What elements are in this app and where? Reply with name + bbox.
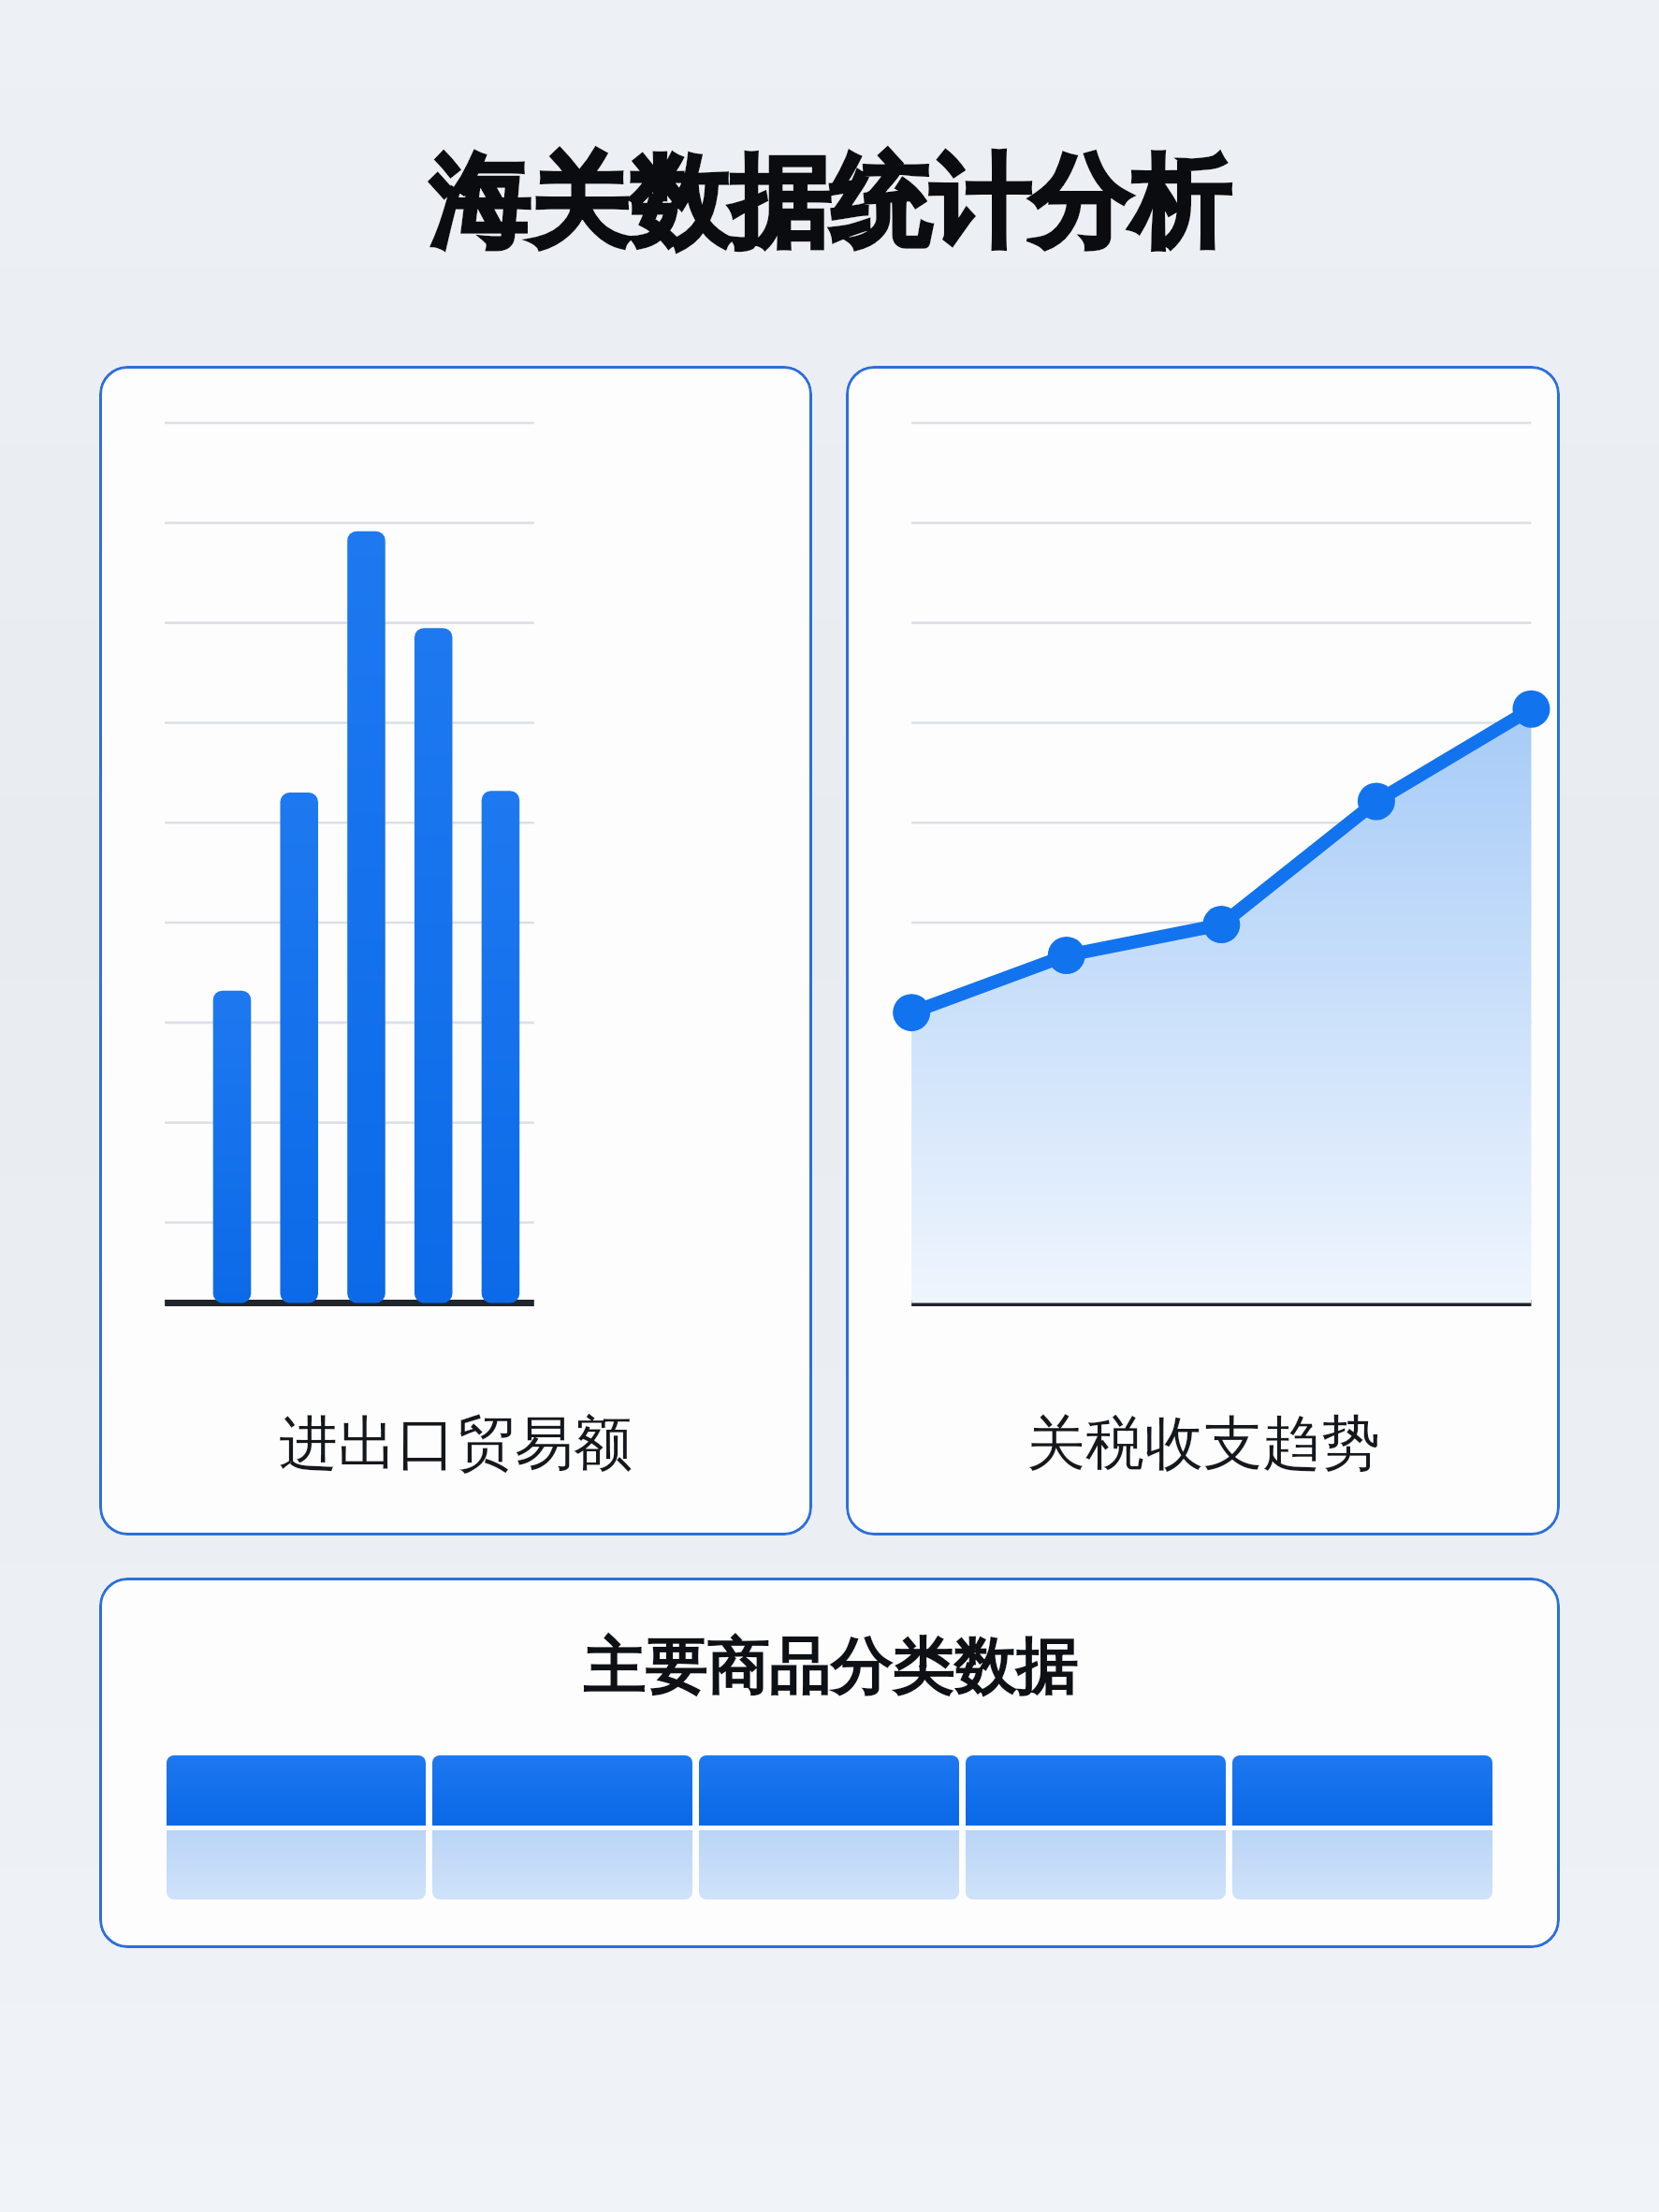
- button[interactable]: [167, 1755, 426, 1826]
- button[interactable]: [966, 1830, 1226, 1899]
- button[interactable]: 主要商品分类数据: [99, 1578, 1560, 1948]
- button[interactable]: [1232, 1830, 1492, 1899]
- button[interactable]: [699, 1830, 959, 1899]
- button[interactable]: 关税收支趋势: [846, 366, 1560, 1535]
- button[interactable]: [1232, 1755, 1492, 1826]
- button[interactable]: 进出口贸易额: [99, 366, 812, 1535]
- staticText: 海关数据统计分析: [0, 140, 1659, 267]
- button[interactable]: [699, 1755, 959, 1826]
- button[interactable]: [167, 1830, 426, 1899]
- staticText: 关税收支趋势: [1026, 1406, 1380, 1480]
- button[interactable]: [966, 1755, 1226, 1826]
- staticText: 主要商品分类数据: [583, 1628, 1077, 1706]
- button[interactable]: [432, 1830, 692, 1899]
- staticText: 进出口贸易额: [279, 1406, 633, 1480]
- button[interactable]: [432, 1755, 692, 1826]
